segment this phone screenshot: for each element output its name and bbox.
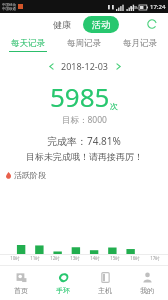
staticText: 10时 — [10, 255, 20, 261]
staticText: 健康 — [53, 19, 71, 30]
button[interactable]: 首页 — [0, 266, 42, 300]
button[interactable]: 每月记录 — [112, 35, 168, 55]
button[interactable]: 每周记录 — [56, 35, 112, 55]
staticText: 2018-12-03 — [61, 60, 108, 72]
staticText: 13时 — [70, 255, 80, 261]
staticText: 主机 — [98, 286, 112, 295]
staticText: 每天记录 — [11, 38, 45, 49]
staticText: 中国移动 — [2, 3, 16, 7]
staticText: 活动 — [92, 19, 110, 30]
staticText: 16时 — [130, 255, 140, 261]
button[interactable]: 每天记录 — [0, 35, 56, 55]
staticText: 17时 — [150, 255, 160, 261]
staticText: 活跃阶段 — [14, 170, 46, 180]
button[interactable]: 主机 — [84, 266, 126, 300]
staticText: 64% — [130, 5, 138, 10]
staticText: 每周记录 — [67, 38, 101, 49]
staticText: 目标：8000 — [62, 114, 107, 126]
staticText: 我的 — [140, 286, 154, 295]
staticText: 次 — [110, 101, 118, 111]
staticText: 目标未完成哦！请再接再厉！ — [26, 151, 143, 162]
staticText: 手环 — [56, 286, 70, 295]
staticText: 完成率：74.81% — [47, 134, 121, 148]
button[interactable]: 我的 — [126, 266, 168, 300]
staticText: 中国联通 — [2, 7, 16, 11]
staticText: 11时 — [30, 255, 40, 261]
button[interactable]: 健康 — [49, 17, 75, 32]
staticText: 12时 — [50, 255, 60, 261]
button[interactable]: Refresh — [144, 16, 160, 32]
button[interactable]: Next day — [110, 58, 126, 74]
button[interactable]: 手环 — [42, 266, 84, 300]
button[interactable]: Previous day — [43, 58, 59, 74]
staticText: 17:24 — [150, 3, 166, 11]
staticText: 首页 — [14, 286, 28, 295]
staticText: 每月记录 — [123, 38, 157, 49]
button[interactable]: 活动 — [83, 16, 119, 33]
staticText: 14时 — [90, 255, 100, 261]
staticText: 15时 — [110, 255, 120, 261]
staticText: 5985 — [50, 79, 110, 114]
